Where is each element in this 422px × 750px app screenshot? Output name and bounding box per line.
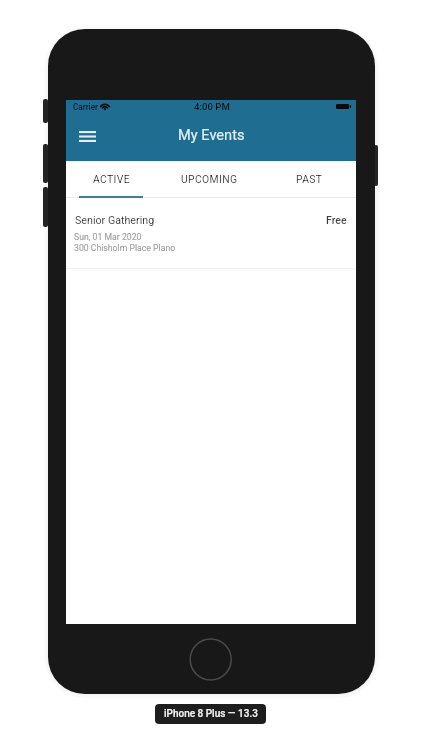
staticText: UPCOMING xyxy=(181,173,238,185)
staticText: 300 Chisholm Place Plano xyxy=(74,243,176,253)
staticText: ACTIVE xyxy=(93,173,130,185)
staticText: Sun, 01 Mar 2020 xyxy=(74,232,142,242)
staticText: 4:00 PM xyxy=(194,101,230,112)
button[interactable] xyxy=(66,161,162,198)
button[interactable]: Open navigation menu xyxy=(72,124,102,148)
button[interactable]: Senior Gathering xyxy=(66,198,356,268)
button[interactable] xyxy=(259,161,356,198)
staticText: My Events xyxy=(178,126,245,143)
staticText: Senior Gathering xyxy=(75,214,155,227)
staticText: Free xyxy=(326,214,347,226)
staticText: iPhone 8 Plus — 13.3 xyxy=(164,708,258,720)
button[interactable] xyxy=(162,161,259,198)
staticText: PAST xyxy=(296,173,323,185)
staticText: Carrier xyxy=(73,102,98,112)
